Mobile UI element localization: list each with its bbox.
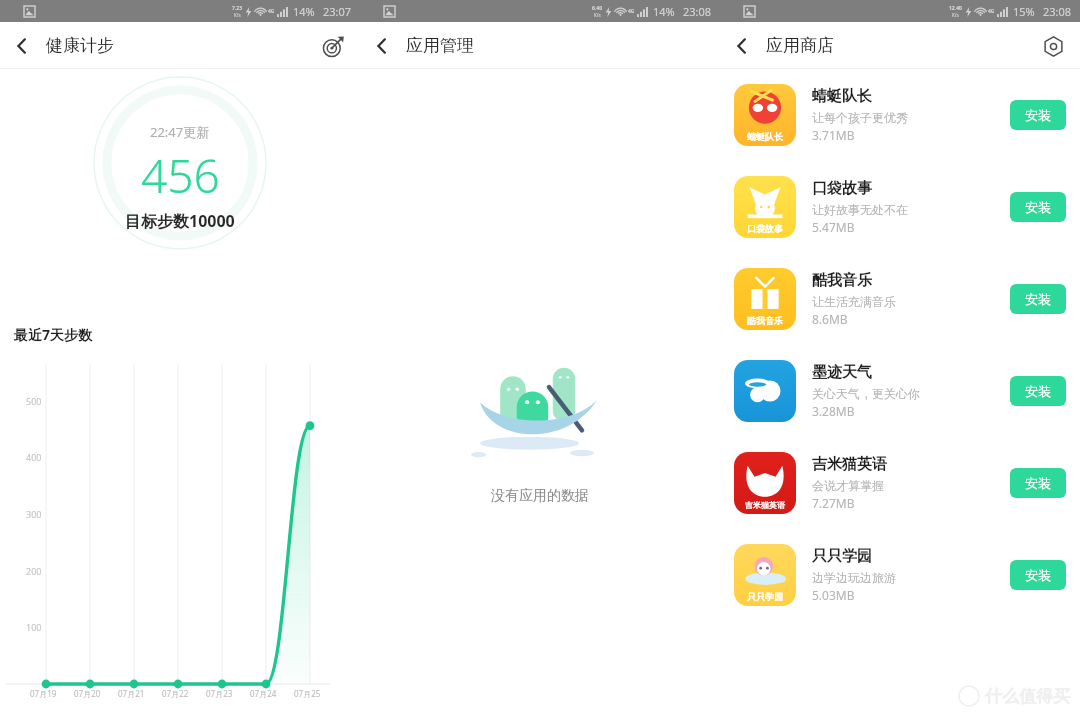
- staticText: 吉米猫英语: [745, 500, 785, 510]
- staticText: 安装: [1025, 107, 1051, 123]
- button[interactable]: Set step goal: [313, 26, 353, 66]
- button[interactable]: 吉米猫英语: [720, 437, 1080, 529]
- staticText: 400: [26, 451, 42, 463]
- button[interactable]: 墨迹天气: [720, 345, 1080, 437]
- staticText: 07月19: [30, 688, 57, 699]
- staticText: 14%: [293, 4, 315, 19]
- staticText: 100: [26, 621, 42, 633]
- staticText: 让好故事无处不在: [812, 202, 908, 217]
- staticText: 23:08: [683, 4, 712, 19]
- staticText: 安装: [1025, 291, 1051, 307]
- staticText: 吉米猫英语: [812, 455, 887, 474]
- staticText: 没有应用的数据: [491, 487, 589, 505]
- button[interactable]: 口袋故事: [720, 161, 1080, 253]
- staticText: 456: [141, 144, 220, 207]
- staticText: 安装: [1025, 567, 1051, 583]
- staticText: 8.6MB: [812, 311, 848, 327]
- staticText: K/s: [234, 12, 241, 18]
- staticText: 3.28MB: [812, 403, 855, 419]
- staticText: 蜻蜓队长: [747, 131, 783, 142]
- staticText: 目标步数10000: [125, 210, 235, 232]
- staticText: 安装: [1025, 475, 1051, 491]
- staticText: 安装: [1025, 199, 1051, 215]
- staticText: 4G: [268, 8, 275, 15]
- staticText: 关心天气，更关心你: [812, 386, 920, 401]
- staticText: 200: [26, 565, 42, 577]
- button[interactable]: 安装: [1010, 100, 1066, 130]
- staticText: 健康计步: [46, 35, 114, 56]
- staticText: 酷我音乐: [747, 315, 783, 326]
- staticText: 07月24: [250, 688, 277, 699]
- staticText: 23:07: [323, 4, 352, 19]
- button[interactable]: 酷我音乐: [720, 253, 1080, 345]
- staticText: 让每个孩子更优秀: [812, 110, 908, 125]
- staticText: 300: [26, 508, 42, 520]
- button[interactable]: 安装: [1010, 192, 1066, 222]
- button[interactable]: 只只学园: [720, 529, 1080, 621]
- staticText: 07月21: [118, 688, 145, 699]
- staticText: 让生活充满音乐: [812, 294, 896, 309]
- staticText: 3.71MB: [812, 127, 855, 143]
- button[interactable]: 蜻蜓队长: [720, 69, 1080, 161]
- staticText: 蜻蜓队长: [812, 87, 872, 106]
- staticText: 最近7天步数: [14, 325, 93, 344]
- staticText: 应用商店: [766, 35, 834, 56]
- button[interactable]: 安装: [1010, 560, 1066, 590]
- staticText: 07月25: [294, 688, 321, 699]
- staticText: 安装: [1025, 383, 1051, 399]
- staticText: 12.40: [949, 5, 962, 12]
- staticText: 墨迹天气: [812, 363, 872, 382]
- staticText: 5.47MB: [812, 219, 855, 235]
- staticText: 酷我音乐: [812, 271, 872, 290]
- staticText: 会说才算掌握: [812, 478, 884, 493]
- staticText: 07月20: [74, 688, 101, 699]
- staticText: 14%: [653, 4, 675, 19]
- staticText: 7.23: [232, 5, 242, 12]
- staticText: 7.27MB: [812, 495, 855, 511]
- button[interactable]: Back: [360, 24, 404, 68]
- button[interactable]: 安装: [1010, 284, 1066, 314]
- staticText: 边学边玩边旅游: [812, 570, 896, 585]
- staticText: 4G: [988, 8, 995, 15]
- staticText: 07月23: [206, 688, 233, 699]
- button[interactable]: 安装: [1010, 468, 1066, 498]
- button[interactable]: Settings: [1033, 26, 1073, 66]
- staticText: 5.03MB: [812, 587, 855, 603]
- button[interactable]: Back: [0, 24, 44, 68]
- staticText: 6.40: [592, 5, 602, 12]
- staticText: 只只学园: [812, 547, 872, 566]
- button[interactable]: 安装: [1010, 376, 1066, 406]
- staticText: 07月22: [162, 688, 189, 699]
- staticText: 口袋故事: [812, 179, 872, 198]
- staticText: 15%: [1013, 4, 1035, 19]
- staticText: 只只学园: [747, 591, 783, 602]
- staticText: 23:08: [1043, 4, 1072, 19]
- staticText: 应用管理: [406, 35, 474, 56]
- staticText: 4G: [628, 8, 635, 15]
- staticText: 22:47更新: [150, 123, 210, 141]
- staticText: 500: [26, 395, 42, 407]
- staticText: 什么值得买: [985, 686, 1070, 707]
- button[interactable]: Back: [720, 24, 764, 68]
- staticText: K/s: [952, 12, 959, 18]
- staticText: K/s: [594, 12, 601, 18]
- staticText: 口袋故事: [747, 223, 783, 234]
